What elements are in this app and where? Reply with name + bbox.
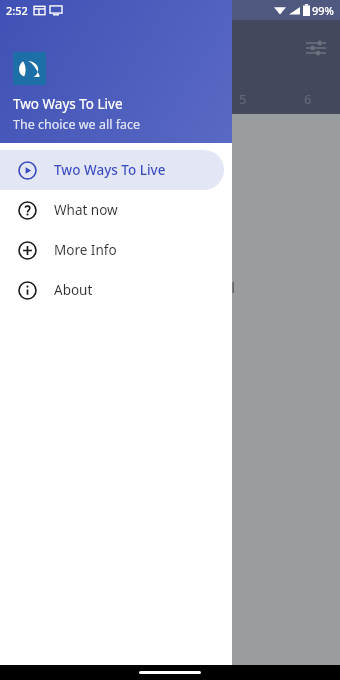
staticText: Two Ways To Live <box>54 161 166 179</box>
staticText: God about his son Jesus. It is <box>16 252 211 272</box>
staticText: also about the choice that we all <box>16 277 235 297</box>
staticText: done. It is a message from <box>16 227 197 247</box>
staticText: About <box>54 281 93 299</box>
button[interactable]: Two Ways To Live <box>0 150 224 190</box>
staticText: The heart of Christianity is <box>16 152 195 172</box>
button[interactable]: Settings <box>300 32 332 64</box>
staticText: 2:52 <box>6 3 28 18</box>
staticText: 6 <box>304 90 312 108</box>
staticText: More Info <box>54 241 117 259</box>
staticText: 99% <box>312 3 334 18</box>
staticText: the good news of what God <box>16 177 204 197</box>
button[interactable]: About <box>0 270 224 310</box>
staticText: 5 <box>239 90 247 108</box>
staticText: The choice we all face <box>13 116 140 133</box>
staticText: What now <box>54 201 118 219</box>
button[interactable]: 5 <box>210 84 275 114</box>
button[interactable]: What now <box>0 190 224 230</box>
staticText: Two Ways To Live <box>13 95 123 113</box>
button[interactable]: 6 <box>275 84 340 114</box>
staticText: has done through to be <box>16 202 177 222</box>
button[interactable]: More Info <box>0 230 224 270</box>
